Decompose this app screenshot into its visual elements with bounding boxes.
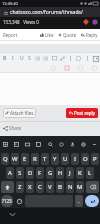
button[interactable]: O: [81, 153, 89, 165]
staticText: Like: [45, 32, 54, 38]
button[interactable]: N: [66, 181, 74, 193]
staticText: R: [33, 155, 37, 163]
button[interactable]: S: [16, 167, 24, 179]
button[interactable]: Clipboard: [2, 141, 9, 148]
staticText: D: [28, 169, 33, 177]
staticText: S: [28, 55, 31, 62]
button[interactable]: B: [56, 181, 64, 193]
button[interactable]: Voice: [69, 141, 76, 148]
staticText: Post reply: [74, 110, 95, 116]
staticText: K: [78, 169, 82, 177]
staticText: Attach files: [10, 110, 34, 116]
button[interactable]: V: [46, 181, 54, 193]
button[interactable]: Format: [77, 65, 83, 71]
button[interactable]: ?123: [1, 195, 13, 207]
staticText: V: [48, 183, 52, 191]
staticText: O: [83, 155, 88, 163]
button[interactable]: J: [66, 167, 74, 179]
button[interactable]: Insert image: [92, 55, 99, 62]
button[interactable]: Format: [91, 65, 97, 71]
button[interactable]: Emoji: [75, 55, 82, 62]
button[interactable]: U: [61, 153, 69, 165]
button[interactable]: Enter: [85, 195, 99, 207]
button[interactable]: H: [56, 167, 64, 179]
button[interactable]: T: [41, 153, 49, 165]
button[interactable]: Translate: [58, 141, 65, 148]
button[interactable]: Sticker: [35, 141, 42, 148]
staticText: I: [74, 155, 77, 163]
staticText: U: [63, 155, 68, 163]
button[interactable]: W: [11, 153, 19, 165]
staticText: Report: [3, 32, 18, 38]
button[interactable]: R: [31, 153, 39, 165]
button[interactable]: List: [34, 55, 41, 62]
staticText: Q: [3, 155, 8, 163]
button[interactable]: U: [18, 55, 25, 62]
button[interactable]: Site information: [3, 10, 8, 15]
button[interactable]: Z: [16, 181, 24, 193]
button[interactable]: Quote: [51, 55, 58, 62]
staticText: F: [38, 169, 42, 177]
button[interactable]: P: [91, 153, 99, 165]
staticText: X: [28, 183, 32, 191]
staticText: Z: [18, 183, 22, 191]
button[interactable]: L: [86, 167, 94, 179]
button[interactable]: More: [67, 55, 74, 62]
button[interactable]: C: [36, 181, 44, 193]
button[interactable]: K: [76, 167, 84, 179]
staticText: E: [23, 155, 27, 163]
button[interactable]: I: [9, 55, 16, 62]
button[interactable]: Text colour: [64, 65, 70, 71]
staticText: 153,348 Views 0: [3, 19, 39, 25]
button[interactable]: GIF: [24, 141, 31, 148]
button[interactable]: Theme: [13, 141, 20, 148]
button[interactable]: List: [42, 55, 49, 62]
button[interactable]: G: [46, 167, 54, 179]
button[interactable]: Attach files: [3, 108, 36, 118]
button[interactable]: D: [26, 167, 34, 179]
staticText: 12:40:40: [2, 1, 18, 6]
button[interactable]: Link: [59, 55, 66, 62]
button[interactable]: Q: [1, 153, 9, 165]
button[interactable]: Settings: [80, 141, 87, 148]
button[interactable]: X: [26, 181, 34, 193]
button[interactable]: Post reply: [66, 108, 98, 118]
staticText: H: [58, 169, 63, 177]
staticText: M: [77, 183, 83, 191]
staticText: Reply: [86, 32, 98, 38]
button[interactable]: E: [21, 153, 29, 165]
button[interactable]: A: [6, 167, 14, 179]
staticText: Share: [9, 125, 22, 131]
button[interactable]: F: [36, 167, 44, 179]
button[interactable]: S: [26, 55, 33, 62]
button[interactable]: B: [1, 55, 8, 62]
staticText: chatzozo.com/forums/threads/: [10, 9, 83, 16]
button[interactable]: Emoji: [15, 195, 23, 207]
staticText: W: [12, 155, 18, 163]
staticText: T: [43, 155, 47, 163]
staticText: S: [18, 169, 22, 177]
staticText: ?123: [2, 198, 12, 204]
staticText: G: [48, 169, 53, 177]
button[interactable]: Search: [47, 141, 54, 148]
button[interactable]: I: [71, 153, 79, 165]
staticText: U: [20, 55, 24, 62]
button[interactable]: More: [91, 141, 98, 148]
button[interactable]: M: [76, 181, 84, 193]
button[interactable]: Report: [3, 30, 18, 40]
button[interactable]: Format: [50, 65, 56, 71]
button[interactable]: More: [84, 55, 91, 62]
button[interactable]: Like: [40, 30, 54, 40]
staticText: .: [78, 197, 80, 205]
button[interactable]: Share: [3, 125, 22, 131]
button[interactable]: Reply: [81, 30, 98, 40]
button[interactable]: Shift: [1, 181, 14, 193]
button[interactable]: .: [75, 195, 83, 207]
button[interactable]: Quote: [58, 30, 77, 40]
button[interactable]: Y: [51, 153, 59, 165]
button[interactable]: Hide keyboard: [9, 211, 16, 218]
button[interactable]: Backspace: [86, 181, 99, 193]
staticText: all: [88, 1, 92, 6]
staticText: J: [69, 169, 71, 177]
